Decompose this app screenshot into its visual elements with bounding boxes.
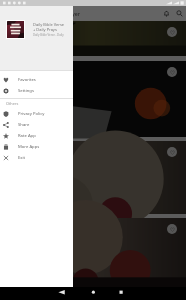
- staticText: Favorites: [18, 77, 36, 83]
- button[interactable]: Exit: [0, 152, 73, 163]
- button[interactable]: Add to favorites: [167, 147, 177, 157]
- button[interactable]: More Apps: [0, 141, 73, 152]
- staticText: Exit: [18, 155, 26, 161]
- button[interactable]: Privacy Policy: [0, 108, 73, 119]
- staticText: Bible Verse + Daily Prayer: [17, 10, 80, 17]
- button[interactable]: Share: [0, 119, 73, 130]
- button[interactable]: Add to favorites: [167, 67, 177, 77]
- button[interactable]: Prayers for Thanksgiving: [0, 141, 186, 214]
- staticText: Share: [18, 122, 30, 128]
- button[interactable]: Prayers For Wisdom: [0, 218, 186, 287]
- button[interactable]: Open navigation drawer: [0, 6, 15, 21]
- staticText: Daily Bible Verse - Daily Prayer App: [33, 33, 71, 37]
- button[interactable]: Prayers for Strength: [0, 61, 186, 137]
- button[interactable]: Notifications: [160, 7, 173, 20]
- staticText: More Apps: [18, 144, 40, 150]
- button[interactable]: Search: [173, 7, 186, 20]
- button[interactable]: Prayers for Hope: [0, 21, 186, 56]
- staticText: Prayers for Strength: [4, 93, 50, 100]
- staticText: Prayers for Hope: [4, 36, 43, 43]
- button[interactable]: Settings: [0, 85, 73, 96]
- staticText: Privacy Policy: [18, 111, 45, 117]
- button[interactable]: Rate App: [0, 130, 73, 141]
- button[interactable]: Favorites: [0, 74, 73, 85]
- button[interactable]: Add to favorites: [167, 224, 177, 234]
- staticText: Settings: [18, 88, 34, 94]
- button[interactable]: Add to favorites: [167, 27, 177, 37]
- staticText: Others: [6, 101, 19, 106]
- staticText: Daily Bible Verse + Daily Prays: [33, 22, 67, 32]
- staticText: Rate App: [18, 133, 36, 139]
